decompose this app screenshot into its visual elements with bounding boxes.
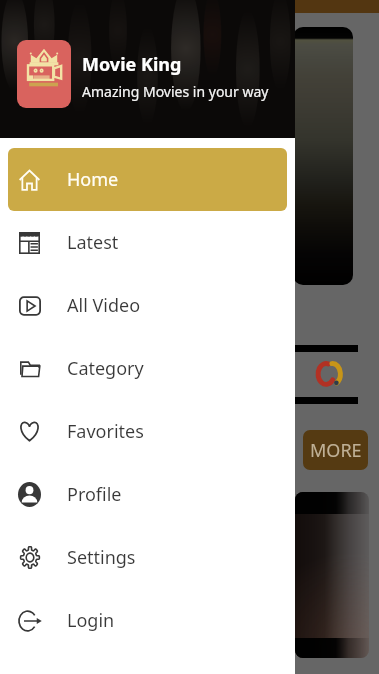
button[interactable]: Settings <box>8 526 287 589</box>
staticText: Favorites <box>67 419 144 444</box>
staticText: MORE <box>310 438 362 463</box>
button[interactable]: Home <box>8 148 287 211</box>
button[interactable]: Category <box>8 337 287 400</box>
staticText: Category <box>67 356 144 381</box>
staticText: Profile <box>67 482 122 507</box>
button[interactable]: Profile <box>8 463 287 526</box>
staticText: Amazing Movies in your way <box>82 82 269 101</box>
button[interactable]: Favorites <box>8 400 287 463</box>
staticText: Home <box>67 167 119 192</box>
staticText: Movie King <box>82 52 182 77</box>
staticText: Settings <box>67 545 136 570</box>
button[interactable]: Login <box>8 589 287 652</box>
button[interactable]: MORE <box>303 430 368 470</box>
staticText: All Video <box>67 293 141 318</box>
staticText: Latest <box>67 230 119 255</box>
staticText: Login <box>67 608 115 633</box>
button[interactable]: Latest <box>8 211 287 274</box>
button[interactable]: All Video <box>8 274 287 337</box>
